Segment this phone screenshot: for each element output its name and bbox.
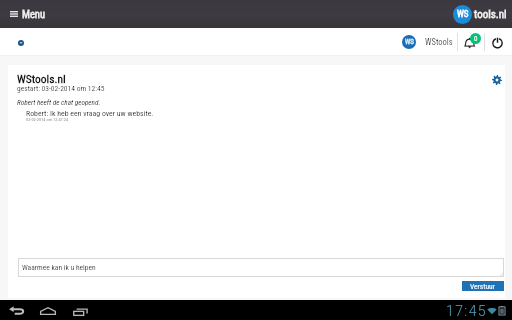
- staticText: WStools: [425, 37, 453, 47]
- button[interactable]: Recent apps: [68, 300, 92, 320]
- button[interactable]: Back: [4, 300, 28, 320]
- button[interactable]: Waarmee kan ik u helpen: [18, 258, 504, 277]
- staticText: Robert: Ik heb een vraag over uw website…: [26, 109, 154, 118]
- staticText: gestart: 03-02-2014 om 12:45: [17, 84, 105, 93]
- staticText: 17:45: [446, 303, 488, 319]
- staticText: Waarmee kan ik u helpen: [22, 263, 96, 272]
- button[interactable]: Verstuur: [462, 281, 504, 291]
- staticText: Verstuur: [470, 282, 496, 291]
- button[interactable]: Settings: [491, 74, 502, 85]
- staticText: WStools.nl: [17, 72, 66, 85]
- staticText: WS: [457, 9, 469, 20]
- button[interactable]: Log out: [488, 33, 506, 51]
- button[interactable]: Notifications: [460, 32, 480, 52]
- button[interactable]: Website: [13, 35, 28, 50]
- staticText: WS: [405, 38, 414, 46]
- staticText: Menu: [22, 8, 46, 20]
- staticText: 03-02-2014 om 12:47:24: [26, 117, 69, 122]
- button[interactable]: Menu: [6, 0, 160, 28]
- staticText: 0: [474, 35, 478, 43]
- button[interactable]: WS: [400, 31, 455, 53]
- staticText: Robert heeft de chat geopend.: [17, 98, 101, 106]
- button[interactable]: WS: [452, 5, 508, 24]
- button[interactable]: Home: [36, 300, 60, 320]
- staticText: tools.nl: [474, 8, 507, 21]
